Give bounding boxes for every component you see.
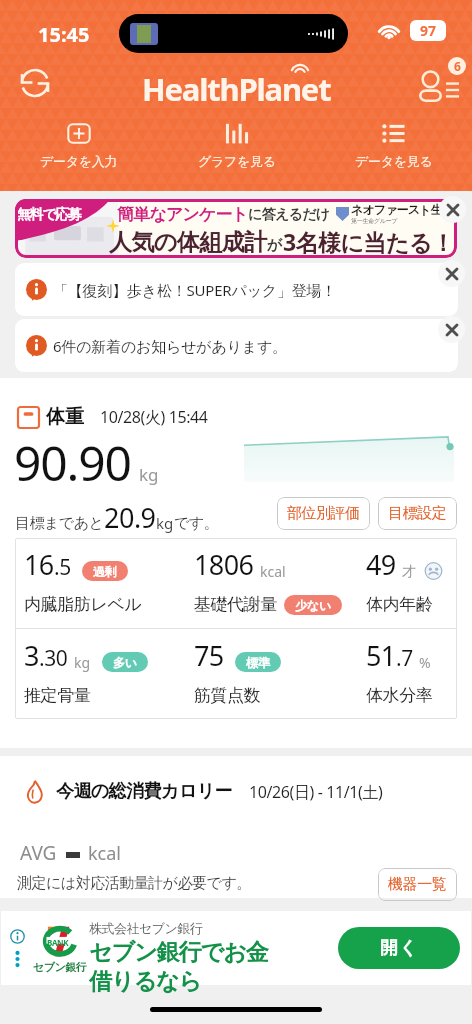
- staticText: 過剰: [93, 564, 117, 579]
- staticText: に答えるだけ: [248, 206, 330, 224]
- button[interactable]: 51: [348, 629, 457, 719]
- staticText: 6件の新着のお知らせがあります。: [53, 336, 287, 356]
- staticText: 目標設定: [388, 504, 447, 523]
- staticText: グラフを見る: [198, 153, 276, 169]
- staticText: データを入力: [40, 153, 118, 169]
- staticText: 基礎代謝量: [194, 594, 277, 615]
- button[interactable]: データを入力: [0, 122, 158, 178]
- staticText: 体重: [46, 405, 84, 429]
- staticText: 才: [402, 563, 416, 581]
- staticText: 6: [454, 58, 461, 74]
- staticText: 内臓脂肪レベル: [24, 594, 142, 615]
- staticText: 簡単なアンケート: [117, 204, 248, 225]
- staticText: 目標まであと: [15, 514, 104, 533]
- staticText: 借りるなら: [89, 967, 202, 994]
- staticText: 3: [24, 637, 39, 674]
- button[interactable]: 無料で応募: [15, 199, 457, 258]
- staticText: 開く: [380, 937, 419, 960]
- button[interactable]: 16: [15, 538, 178, 628]
- staticText: .7: [396, 644, 413, 673]
- staticText: 第一生命グループ: [351, 217, 398, 225]
- button[interactable]: 49: [348, 538, 457, 628]
- staticText: 「【復刻】歩き松！SUPERパック」登場！: [53, 280, 337, 300]
- button[interactable]: Close: [438, 316, 465, 343]
- staticText: 体内年齢: [366, 594, 433, 615]
- staticText: 体水分率: [366, 685, 433, 706]
- button[interactable]: 部位別評価: [277, 497, 370, 530]
- staticText: 10/28(火) 15:44: [100, 406, 208, 428]
- staticText: .30: [39, 644, 68, 673]
- staticText: kg: [74, 653, 91, 672]
- staticText: 今週の総消費カロリー: [56, 780, 232, 803]
- staticText: 機器一覧: [388, 875, 447, 894]
- staticText: 3名様に当たる！: [283, 226, 454, 257]
- staticText: 1806: [194, 546, 254, 583]
- staticText: 51: [366, 637, 396, 674]
- staticText: 推定骨量: [24, 685, 91, 706]
- staticText: 97: [420, 21, 437, 40]
- button[interactable]: データを見る: [315, 122, 472, 178]
- staticText: 49: [366, 546, 396, 583]
- staticText: 部位別評価: [287, 504, 360, 523]
- button[interactable]: 3: [15, 629, 178, 719]
- button[interactable]: Close: [438, 260, 465, 287]
- button[interactable]: 75: [178, 629, 348, 719]
- button[interactable]: 1806: [178, 538, 348, 628]
- staticText: AVG: [20, 840, 57, 866]
- button[interactable]: Close: [439, 196, 466, 223]
- staticText: が: [267, 236, 283, 255]
- staticText: 無料で応募: [17, 206, 81, 224]
- staticText: 15:45: [38, 21, 90, 48]
- staticText: 多い: [113, 655, 137, 670]
- staticText: です。: [174, 514, 219, 533]
- button[interactable]: グラフを見る: [158, 122, 315, 178]
- staticText: .5: [54, 553, 71, 582]
- staticText: kg: [139, 463, 159, 486]
- staticText: 株式会社セブン銀行: [89, 920, 203, 936]
- staticText: 90.90: [14, 430, 131, 495]
- button[interactable]: 目標設定: [378, 497, 457, 530]
- staticText: 筋質点数: [194, 685, 261, 706]
- button[interactable]: Refresh: [13, 61, 57, 105]
- staticText: kcal: [260, 562, 286, 581]
- staticText: 少ない: [295, 598, 331, 613]
- staticText: データを見る: [355, 153, 433, 169]
- staticText: 測定には対応活動量計が必要です。: [17, 874, 251, 893]
- staticText: セブン銀行でお金: [89, 938, 268, 967]
- staticText: 標準: [246, 655, 270, 670]
- staticText: 10/26(日) - 11/1(土): [249, 781, 383, 803]
- staticText: ネオファースト生命: [351, 202, 453, 217]
- staticText: kcal: [88, 841, 121, 866]
- staticText: %: [419, 653, 431, 672]
- button[interactable]: 「【復刻】歩き松！SUPERパック」登場！: [15, 263, 458, 316]
- staticText: BANK: [47, 937, 69, 948]
- staticText: HealthPlanet: [142, 68, 331, 110]
- staticText: 人気の体組成計: [109, 228, 267, 257]
- staticText: 20.9: [104, 499, 156, 536]
- staticText: セブン銀行: [33, 960, 87, 974]
- staticText: 75: [194, 637, 224, 674]
- button[interactable]: 開く: [338, 927, 460, 969]
- staticText: kg: [156, 513, 174, 533]
- button[interactable]: 6件の新着のお知らせがあります。: [15, 319, 458, 372]
- button[interactable]: 機器一覧: [378, 868, 457, 901]
- button[interactable]: Account: [416, 54, 468, 106]
- staticText: 16: [24, 546, 54, 583]
